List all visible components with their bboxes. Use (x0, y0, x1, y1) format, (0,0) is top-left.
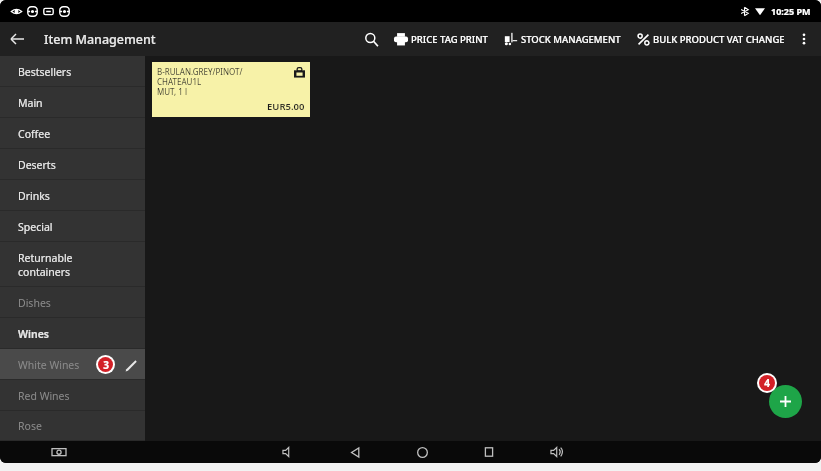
staticText: White Wines (18, 358, 80, 372)
staticText: Dishes (18, 296, 51, 310)
button[interactable]: Rose (0, 411, 145, 441)
button[interactable]: Back (0, 22, 34, 56)
staticText: EUR5.00 (267, 100, 305, 113)
staticText: Rose (18, 419, 42, 433)
staticText: Item Management (44, 31, 156, 48)
button[interactable]: Recents (478, 441, 500, 463)
button[interactable]: B-RULAN.GREY/PINOT/CHATEAU1L MUT, 1 l (152, 62, 310, 117)
button[interactable]: Volume up (545, 441, 567, 463)
staticText: Wines (18, 327, 49, 341)
button[interactable]: Deserts (0, 149, 145, 180)
button[interactable]: Edit category (121, 356, 139, 374)
button[interactable]: Add item (769, 385, 802, 418)
button[interactable]: Coffee (0, 118, 145, 149)
staticText: BULK PRODUCT VAT CHANGE (653, 33, 785, 46)
button[interactable]: Home (411, 441, 433, 463)
button[interactable]: White Wines (0, 349, 145, 380)
button[interactable]: Volume down (277, 441, 299, 463)
staticText: PRICE TAG PRINT (411, 33, 488, 46)
staticText: B-RULAN.GREY/PINOT/CHATEAU1L MUT, 1 l (157, 66, 285, 97)
staticText: Special (18, 220, 53, 234)
staticText: Main (18, 96, 43, 110)
button[interactable]: Back (344, 441, 366, 463)
button[interactable]: STOCK MANAGEMENT (504, 28, 621, 50)
button[interactable]: Wines (0, 318, 145, 349)
button[interactable]: Returnable containers (0, 242, 145, 287)
button[interactable]: Red Wines (0, 380, 145, 411)
staticText: Drinks (18, 189, 50, 203)
staticText: 4 (764, 376, 770, 390)
button[interactable]: Drinks (0, 180, 145, 211)
staticText: Returnable containers (18, 251, 73, 279)
button[interactable]: Search (356, 24, 386, 54)
staticText: 3 (103, 358, 109, 372)
staticText: 10:25 PM (771, 5, 811, 17)
staticText: STOCK MANAGEMENT (521, 33, 621, 46)
staticText: Red Wines (18, 389, 70, 403)
button[interactable]: More options (791, 26, 817, 52)
staticText: Deserts (18, 158, 56, 172)
button[interactable]: Bestsellers (0, 56, 145, 87)
button[interactable]: Screenshot (48, 441, 70, 463)
staticText: Coffee (18, 127, 51, 141)
button[interactable]: PRICE TAG PRINT (394, 28, 488, 50)
button[interactable]: Main (0, 87, 145, 118)
button[interactable]: Dishes (0, 287, 145, 318)
button[interactable]: Special (0, 211, 145, 242)
staticText: Bestsellers (18, 65, 72, 79)
button[interactable]: BULK PRODUCT VAT CHANGE (637, 29, 785, 50)
